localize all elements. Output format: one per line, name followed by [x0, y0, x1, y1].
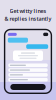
- staticText: Get witty lines: [9, 7, 46, 14]
- button[interactable]: [8, 63, 48, 67]
- button[interactable]: [8, 68, 48, 72]
- button[interactable]: Brand: [8, 33, 17, 36]
- button[interactable]: Profile: [43, 33, 48, 36]
- button[interactable]: [8, 73, 48, 77]
- staticText: & replies instantly: [4, 15, 51, 22]
- button[interactable]: [8, 78, 48, 81]
- button[interactable]: Continue: [5, 84, 51, 90]
